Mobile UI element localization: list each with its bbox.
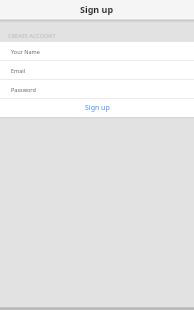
button[interactable]: Password	[0, 80, 194, 98]
staticText: Sign up	[80, 3, 114, 15]
staticText: Your Name	[11, 48, 40, 55]
staticText: Sign up	[85, 103, 110, 113]
button[interactable]: Email	[0, 61, 194, 79]
staticText: CREATE ACCOUNT	[8, 32, 56, 39]
button[interactable]: Your Name	[0, 42, 194, 60]
staticText: Password	[11, 86, 36, 93]
button[interactable]: Sign up	[0, 99, 194, 117]
staticText: Email	[11, 67, 26, 74]
